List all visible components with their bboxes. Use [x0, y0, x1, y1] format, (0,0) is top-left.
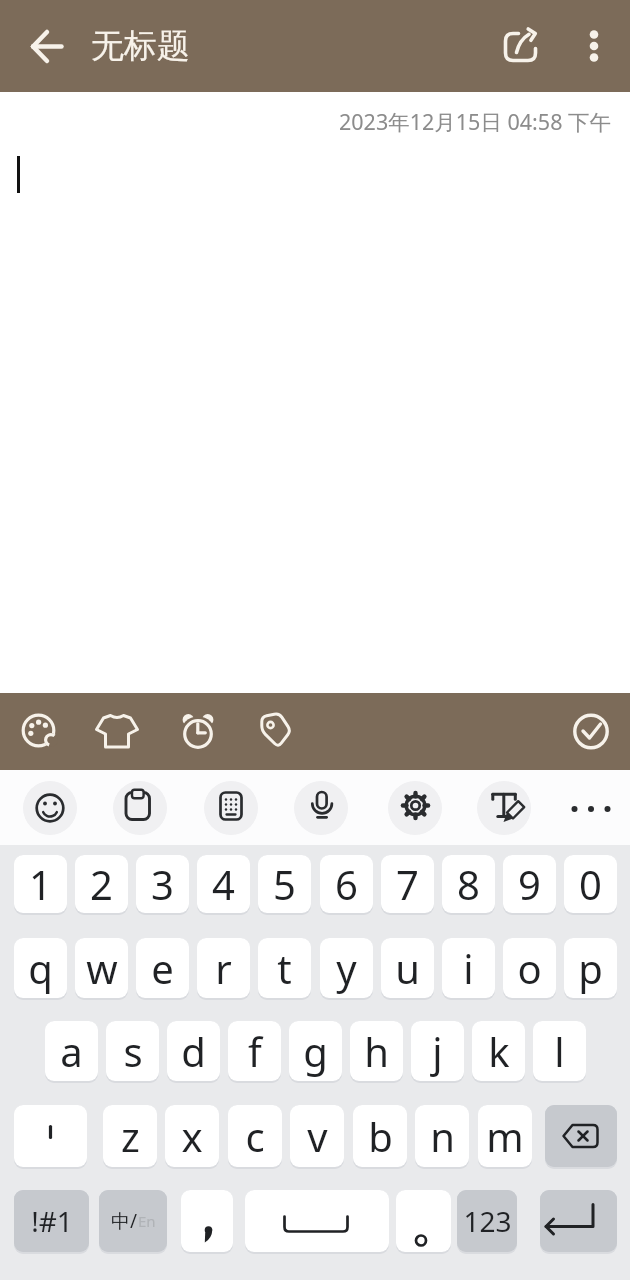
staticText: 0: [579, 857, 602, 911]
button[interactable]: 6: [320, 855, 373, 913]
button[interactable]: h: [350, 1021, 403, 1081]
staticText: 4: [212, 857, 235, 911]
button[interactable]: q: [14, 938, 67, 998]
button[interactable]: 1: [14, 855, 67, 913]
staticText: s: [123, 1024, 143, 1078]
staticText: p: [578, 941, 603, 995]
staticText: 中/: [111, 1208, 138, 1234]
button[interactable]: t: [258, 938, 311, 998]
button[interactable]: 2: [75, 855, 128, 913]
staticText: 7: [396, 857, 419, 911]
staticText: 2023年12月15日 04:58 下午: [339, 107, 612, 136]
button[interactable]: [248, 703, 304, 759]
staticText: b: [368, 1109, 393, 1163]
staticText: e: [151, 941, 174, 995]
staticText: 1: [29, 857, 52, 911]
button[interactable]: o: [503, 938, 556, 998]
button[interactable]: e: [136, 938, 189, 998]
button[interactable]: 5: [258, 855, 311, 913]
button[interactable]: a: [45, 1021, 98, 1081]
button[interactable]: r: [197, 938, 250, 998]
button[interactable]: [563, 703, 619, 759]
staticText: m: [486, 1109, 524, 1163]
button[interactable]: l: [533, 1021, 586, 1081]
staticText: f: [248, 1024, 262, 1078]
button[interactable]: b: [353, 1105, 407, 1167]
button[interactable]: !#1: [14, 1190, 89, 1252]
staticText: 6: [335, 857, 358, 911]
button[interactable]: i: [442, 938, 495, 998]
staticText: l: [554, 1024, 565, 1078]
staticText: v: [307, 1109, 328, 1163]
staticText: h: [364, 1024, 389, 1078]
staticText: d: [181, 1024, 206, 1078]
staticText: 无标题: [91, 25, 190, 67]
button[interactable]: w: [75, 938, 128, 998]
button[interactable]: 3: [136, 855, 189, 913]
button[interactable]: f: [228, 1021, 281, 1081]
staticText: c: [245, 1109, 265, 1163]
button[interactable]: [14, 1105, 87, 1167]
staticText: 3: [151, 857, 174, 911]
button[interactable]: [181, 1190, 233, 1252]
button[interactable]: 123: [457, 1190, 517, 1252]
button[interactable]: [566, 14, 622, 78]
button[interactable]: [477, 781, 531, 835]
button[interactable]: [169, 703, 225, 759]
staticText: 9: [518, 857, 541, 911]
button[interactable]: [564, 781, 618, 835]
button[interactable]: 4: [197, 855, 250, 913]
staticText: w: [86, 941, 118, 995]
button[interactable]: z: [103, 1105, 157, 1167]
button[interactable]: d: [167, 1021, 220, 1081]
button[interactable]: [388, 781, 442, 835]
staticText: j: [432, 1024, 443, 1078]
button[interactable]: g: [289, 1021, 342, 1081]
button[interactable]: [23, 781, 77, 835]
button[interactable]: [204, 781, 258, 835]
button[interactable]: 中/: [99, 1190, 167, 1252]
staticText: En: [138, 1211, 156, 1231]
button[interactable]: [540, 1190, 617, 1252]
button[interactable]: x: [165, 1105, 219, 1167]
staticText: n: [430, 1109, 455, 1163]
button[interactable]: m: [478, 1105, 532, 1167]
button[interactable]: [89, 703, 145, 759]
button[interactable]: 7: [381, 855, 434, 913]
button[interactable]: [245, 1190, 389, 1252]
staticText: t: [277, 941, 292, 995]
staticText: !#1: [31, 1202, 73, 1240]
staticText: k: [488, 1024, 510, 1078]
button[interactable]: [545, 1105, 617, 1167]
button[interactable]: [486, 14, 550, 78]
staticText: 8: [457, 857, 480, 911]
staticText: 123: [463, 1202, 512, 1240]
button[interactable]: c: [228, 1105, 282, 1167]
button[interactable]: k: [472, 1021, 525, 1081]
staticText: q: [28, 941, 53, 995]
staticText: i: [463, 941, 474, 995]
button[interactable]: [14, 14, 78, 78]
staticText: 5: [273, 857, 296, 911]
button[interactable]: 9: [503, 855, 556, 913]
button[interactable]: u: [381, 938, 434, 998]
staticText: x: [181, 1109, 203, 1163]
button[interactable]: 8: [442, 855, 495, 913]
staticText: y: [336, 941, 357, 995]
button[interactable]: [294, 781, 348, 835]
button[interactable]: v: [290, 1105, 344, 1167]
button[interactable]: s: [106, 1021, 159, 1081]
button[interactable]: 0: [564, 855, 617, 913]
staticText: g: [303, 1024, 328, 1078]
staticText: o: [517, 941, 542, 995]
button[interactable]: p: [564, 938, 617, 998]
staticText: z: [121, 1109, 140, 1163]
button[interactable]: [113, 781, 167, 835]
button[interactable]: j: [411, 1021, 464, 1081]
button[interactable]: [396, 1190, 451, 1252]
staticText: a: [60, 1024, 83, 1078]
button[interactable]: y: [320, 938, 373, 998]
button[interactable]: n: [415, 1105, 469, 1167]
staticText: r: [215, 941, 232, 995]
button[interactable]: [10, 703, 66, 759]
